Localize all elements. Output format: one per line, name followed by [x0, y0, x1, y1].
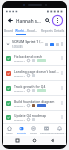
button[interactable]: Home: [31, 137, 38, 144]
button[interactable]: Track growth for Q4: [3, 81, 66, 95]
staticText: SCRUM-1: [14, 74, 25, 77]
staticText: Projects: [17, 132, 26, 135]
button[interactable]: Recents: [14, 137, 21, 144]
button[interactable]: Board: [3, 27, 15, 36]
button[interactable]: Projects: [15, 124, 27, 136]
button[interactable]: Back: [6, 16, 15, 25]
staticText: Roadmap: [27, 29, 40, 33]
button[interactable]: Build foundation diagram: [3, 96, 66, 110]
button[interactable]: Issues: [27, 124, 40, 136]
button[interactable]: Notifications: [53, 124, 66, 136]
button[interactable]: Dashboards: [40, 124, 53, 136]
staticText: 5 ISSUES: [12, 45, 23, 49]
staticText: SCRUM Sprint 1 (Active): [12, 39, 45, 44]
staticText: Issues: [30, 132, 37, 135]
button[interactable]: SCRUM Sprint 1 (Active): [3, 37, 66, 50]
staticText: Working: [15, 29, 27, 33]
button[interactable]: Back: [49, 137, 56, 144]
button[interactable]: Reports: [40, 27, 53, 36]
staticText: Hannah scrum T...: [16, 18, 43, 24]
staticText: Reports: [41, 29, 53, 33]
staticText: Track growth for Q4: [14, 84, 46, 88]
staticText: SCRUM-1: [14, 59, 25, 62]
button[interactable]: Details: [53, 27, 66, 36]
staticText: Update Q4 roadmap: [14, 113, 47, 117]
button[interactable]: Home: [3, 124, 15, 136]
staticText: SCRUM-1: [14, 104, 25, 107]
button[interactable]: Working: [15, 27, 27, 36]
staticText: SCRUM-1: [14, 89, 25, 92]
staticText: Fix backend crash: [14, 54, 43, 58]
button[interactable]: Landing page doesn't load properly: [3, 66, 66, 80]
button[interactable]: More options: [52, 15, 63, 26]
staticText: SCRUM-1: [14, 118, 25, 121]
staticText: Home: [6, 132, 13, 135]
button[interactable]: Update Q4 roadmap: [3, 111, 66, 123]
button[interactable]: Roadmap: [27, 27, 40, 36]
staticText: Build foundation diagram: [14, 99, 55, 103]
button[interactable]: Search: [43, 16, 52, 25]
staticText: Notifications: [53, 132, 66, 135]
staticText: Board: [4, 29, 14, 33]
staticText: Details: [54, 29, 65, 33]
staticText: Landing page doesn't load properly: [14, 69, 61, 73]
button[interactable]: Fix backend crash: [3, 51, 66, 65]
staticText: Dashboards: [40, 132, 53, 135]
